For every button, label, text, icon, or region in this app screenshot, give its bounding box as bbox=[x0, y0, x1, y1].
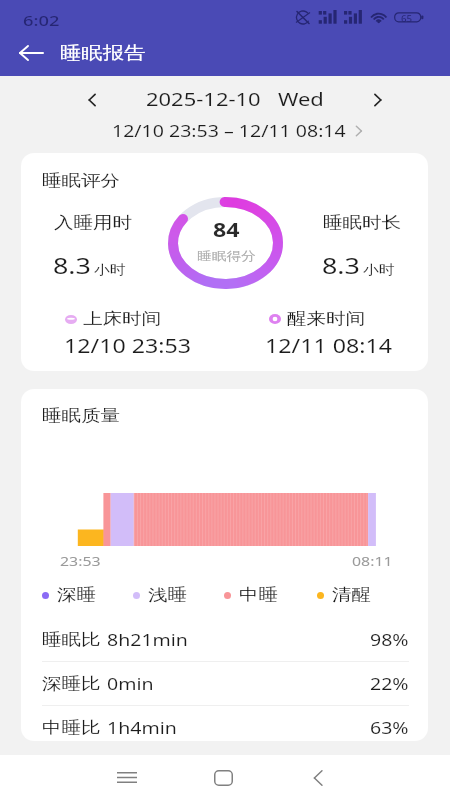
staticText: 12/10 23:53 – 12/11 08:14 bbox=[112, 120, 346, 142]
button[interactable]: 中睡比 bbox=[42, 706, 409, 741]
staticText: 8h21min bbox=[107, 629, 189, 651]
button[interactable]: 清醒 bbox=[317, 585, 407, 605]
button[interactable]: 睡眠比 bbox=[42, 618, 409, 661]
staticText: 98% bbox=[370, 629, 409, 651]
staticText: 小时 bbox=[363, 261, 395, 277]
staticText: 6:02 bbox=[23, 10, 60, 30]
staticText: 12/10 23:53 bbox=[64, 333, 192, 359]
staticText: 1h4min bbox=[107, 717, 178, 739]
button[interactable]: 深睡比 bbox=[42, 662, 409, 705]
staticText: 睡眠质量 bbox=[42, 406, 120, 426]
staticText: 23:53 bbox=[60, 552, 101, 570]
button[interactable]: 上床时间 bbox=[65, 309, 161, 329]
staticText: 睡眠得分 bbox=[197, 248, 256, 263]
staticText: 睡眠评分 bbox=[42, 171, 120, 191]
staticText: 睡眠报告 bbox=[60, 42, 145, 64]
staticText: 入睡用时 bbox=[54, 213, 132, 233]
button[interactable]: Back bbox=[291, 755, 344, 800]
staticText: 0min bbox=[107, 673, 155, 695]
staticText: 8.3 bbox=[53, 250, 92, 280]
staticText: 深睡 bbox=[57, 585, 96, 605]
staticText: 8.3 bbox=[322, 250, 361, 280]
staticText: 清醒 bbox=[332, 585, 371, 605]
staticText: 醒来时间 bbox=[287, 309, 365, 329]
button[interactable]: Home bbox=[197, 755, 250, 800]
staticText: 08:11 bbox=[352, 552, 393, 570]
staticText: 小时 bbox=[94, 261, 126, 277]
staticText: 63% bbox=[370, 717, 409, 739]
staticText: 浅睡 bbox=[148, 585, 187, 605]
button[interactable]: 中睡 bbox=[224, 585, 317, 605]
staticText: 深睡比 bbox=[42, 674, 101, 694]
button[interactable]: Recent apps bbox=[100, 755, 153, 800]
staticText: 睡眠时长 bbox=[323, 213, 401, 233]
button[interactable]: Back bbox=[10, 33, 52, 73]
staticText: 中睡 bbox=[239, 585, 278, 605]
button[interactable]: Next day bbox=[363, 85, 392, 114]
button[interactable]: 深睡 bbox=[42, 585, 133, 605]
button[interactable]: 12/10 23:53 – 12/11 08:14 bbox=[112, 117, 365, 144]
button[interactable]: 醒来时间 bbox=[269, 309, 365, 329]
staticText: 上床时间 bbox=[83, 309, 161, 329]
staticText: 2025-12-10 bbox=[146, 87, 261, 112]
staticText: 中睡比 bbox=[42, 718, 101, 738]
staticText: Wed bbox=[278, 87, 324, 112]
button[interactable]: Previous day bbox=[77, 85, 106, 114]
staticText: 65 bbox=[401, 13, 413, 24]
button[interactable]: 浅睡 bbox=[133, 585, 224, 605]
staticText: 84 bbox=[213, 217, 240, 243]
staticText: 睡眠比 bbox=[42, 630, 101, 650]
button[interactable]: 2025-12-10 bbox=[106, 85, 363, 114]
staticText: 12/11 08:14 bbox=[265, 333, 393, 359]
staticText: 22% bbox=[370, 673, 409, 695]
